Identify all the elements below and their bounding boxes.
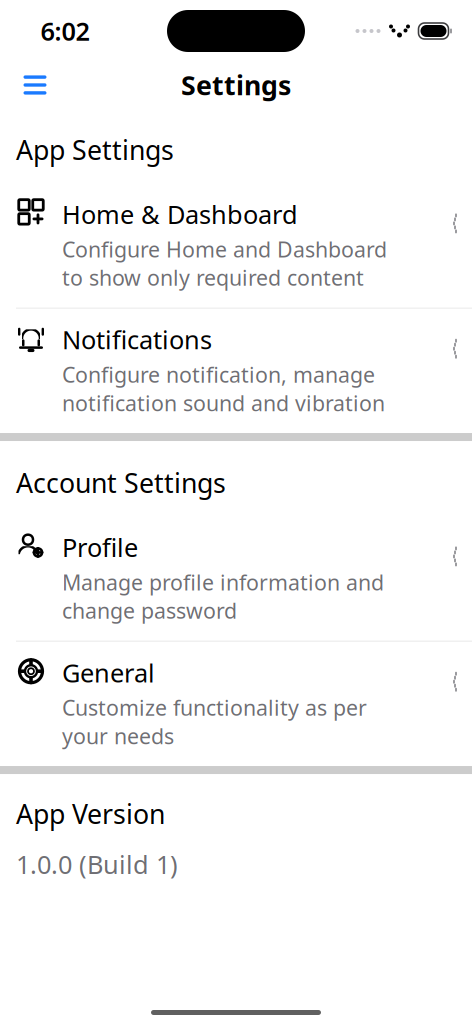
button[interactable]: Profile	[0, 516, 472, 641]
staticText: Home & Dashboard	[62, 197, 298, 231]
staticText: Configure Home and Dashboard to show onl…	[62, 235, 387, 292]
staticText: Account Settings	[16, 465, 226, 500]
staticText: Notifications	[62, 323, 212, 356]
staticText: Configure notification, manage notificat…	[62, 360, 385, 417]
button[interactable]: General	[0, 642, 472, 766]
button[interactable]: Notifications	[0, 309, 472, 433]
staticText: 6:02	[40, 14, 89, 48]
staticText: Settings	[181, 67, 291, 103]
button[interactable]: Home & Dashboard	[0, 183, 472, 308]
staticText: 1.0.0 (Build 1)	[16, 847, 178, 881]
button[interactable]: Menu	[11, 63, 59, 107]
staticText: Profile	[62, 530, 138, 564]
staticText: App Settings	[16, 132, 174, 167]
staticText: General	[62, 656, 155, 689]
staticText: Customize functionality as per your need…	[62, 693, 367, 750]
staticText: App Version	[16, 796, 165, 831]
staticText: Manage profile information and change pa…	[62, 568, 384, 625]
